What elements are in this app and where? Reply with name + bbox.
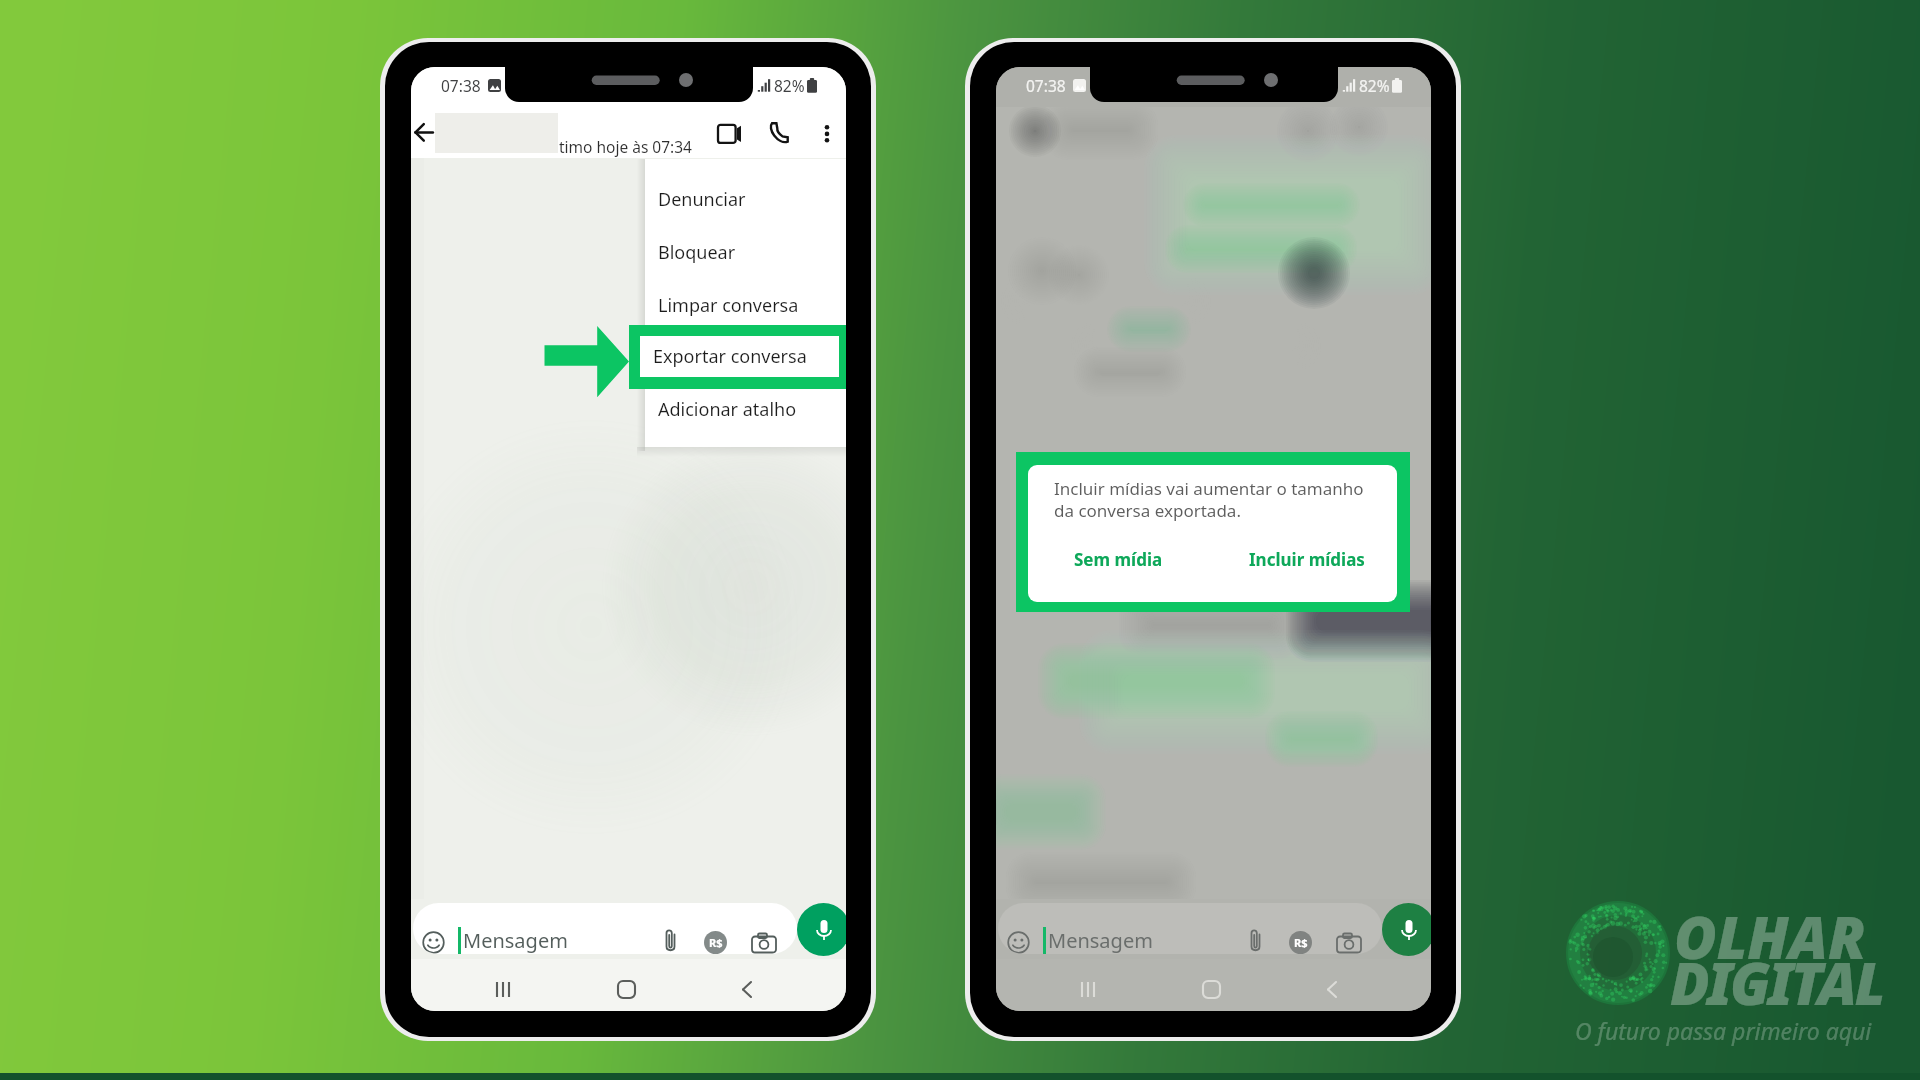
- staticText: Mensagem: [1048, 927, 1153, 954]
- staticText: 07:38: [441, 75, 481, 96]
- button[interactable]: Record voice message: [797, 903, 846, 956]
- staticText: Incluir mídias vai aumentar o tamanho da…: [1054, 477, 1364, 522]
- button[interactable]: Video call: [708, 113, 750, 155]
- button[interactable]: Limpar conversa: [645, 281, 846, 329]
- staticText: Exportar conversa: [658, 345, 812, 370]
- button[interactable]: Exportar conversa: [645, 333, 846, 381]
- button[interactable]: Recents: [1066, 967, 1110, 1011]
- staticText: R$: [709, 935, 723, 950]
- staticText: 82%: [1359, 75, 1390, 96]
- button[interactable]: Mensagem: [998, 903, 1382, 954]
- button[interactable]: Sem mídia: [1066, 542, 1171, 576]
- staticText: Bloquear: [658, 240, 736, 265]
- staticText: O futuro passa primeiro aqui: [1575, 1015, 1872, 1046]
- button[interactable]: Recents: [481, 967, 525, 1011]
- button[interactable]: Denunciar: [645, 175, 846, 223]
- button[interactable]: Record voice message: [1382, 903, 1431, 956]
- staticText: 07:38: [1026, 75, 1066, 96]
- staticText: Limpar conversa: [658, 293, 799, 318]
- button[interactable]: Bloquear: [645, 228, 846, 276]
- staticText: Exportar conversa: [653, 344, 807, 369]
- staticText: Sem mídia: [1074, 548, 1163, 571]
- button[interactable]: Back: [1311, 967, 1355, 1011]
- button[interactable]: More options: [816, 113, 840, 155]
- button[interactable]: Mensagem: [413, 903, 797, 954]
- staticText: Mensagem: [463, 927, 568, 954]
- button[interactable]: Incluir mídias: [1241, 542, 1373, 576]
- button[interactable]: Adicionar atalho: [645, 385, 846, 433]
- staticText: timo hoje às 07:34: [559, 136, 692, 157]
- button[interactable]: Voice call: [763, 113, 801, 151]
- button[interactable]: Home: [1189, 967, 1233, 1011]
- staticText: DIGITAL: [1670, 943, 1884, 1022]
- button[interactable]: Back: [726, 967, 770, 1011]
- staticText: Adicionar atalho: [658, 397, 797, 422]
- button[interactable]: Exportar conversa: [640, 336, 839, 377]
- staticText: 82%: [774, 75, 805, 96]
- staticText: OLHAR: [1674, 897, 1866, 976]
- staticText: Incluir mídias: [1249, 548, 1365, 571]
- button[interactable]: Home: [604, 967, 648, 1011]
- staticText: Denunciar: [658, 187, 746, 212]
- staticText: R$: [1294, 935, 1308, 950]
- button[interactable]: Back: [411, 112, 451, 152]
